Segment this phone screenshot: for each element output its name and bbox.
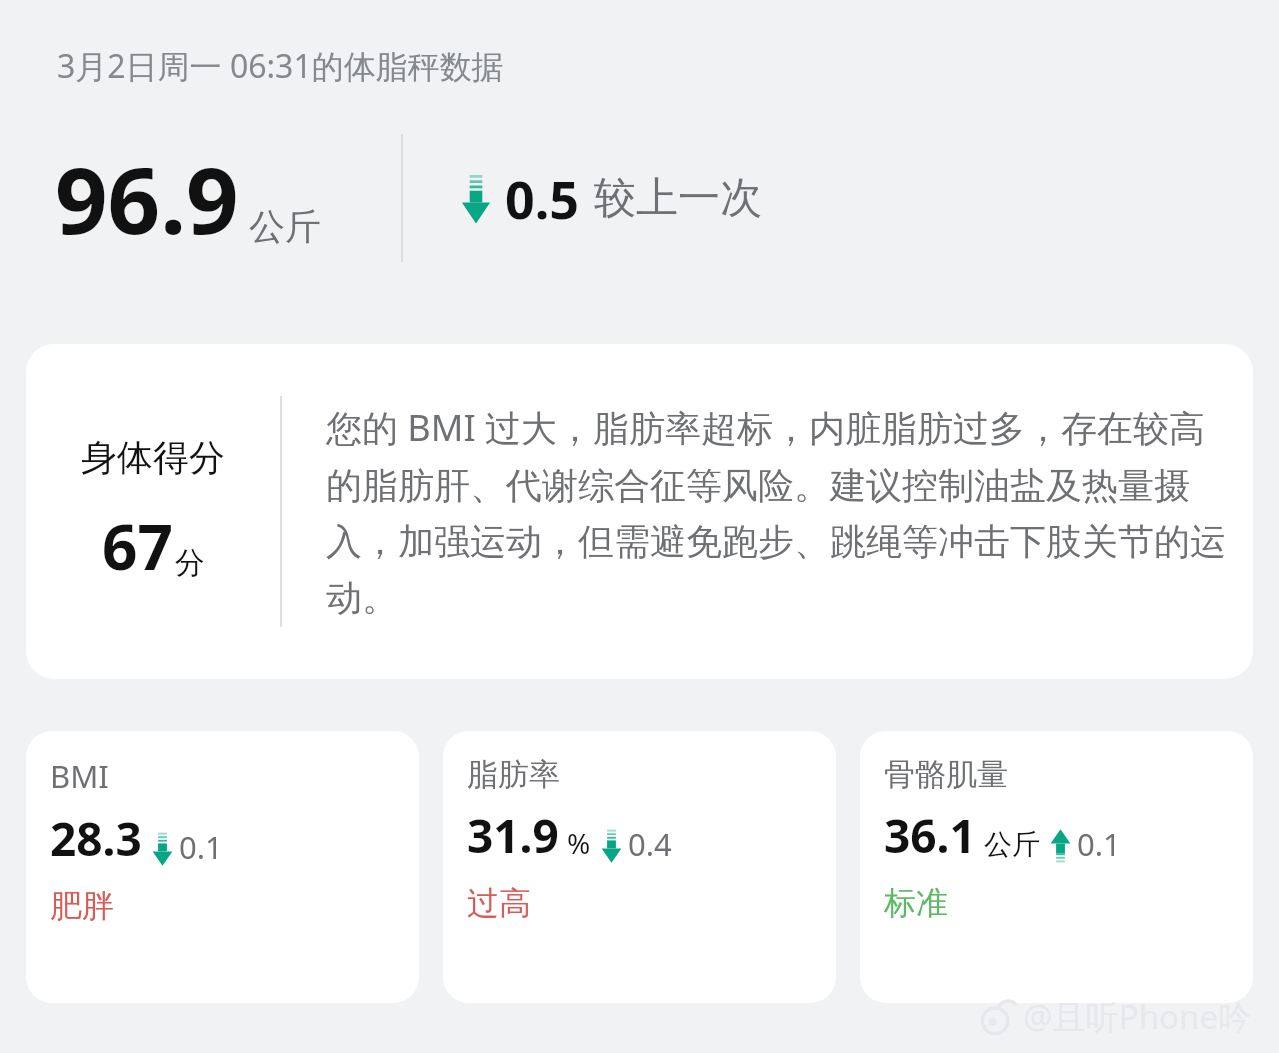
button[interactable]: 骨骼肌量	[860, 731, 1253, 1003]
staticText: 较上一次	[594, 172, 762, 225]
staticText: 36.1	[884, 804, 976, 867]
staticText: 28.3	[50, 807, 142, 870]
staticText: 公斤	[984, 827, 1040, 862]
staticText: 肥胖	[50, 886, 114, 926]
staticText: 31.9	[467, 804, 559, 867]
staticText: 您的 BMI 过大，脂肪率超标，内脏脂肪过多，存在较高的脂肪肝、代谢综合征等风险…	[326, 403, 1227, 621]
staticText: 96.9	[55, 136, 239, 261]
staticText: 0.1	[179, 826, 223, 868]
staticText: @且听Phone吟	[1023, 994, 1251, 1039]
staticText: 67	[102, 504, 173, 588]
button[interactable]: 身体得分	[26, 344, 1253, 679]
staticText: BMI	[50, 755, 109, 797]
staticText: 3月2日周一 06:31的体脂秤数据	[57, 44, 504, 88]
staticText: 0.5	[505, 163, 580, 234]
staticText: 过高	[467, 883, 531, 923]
staticText: 分	[175, 544, 205, 582]
staticText: 骨骼肌量	[884, 755, 1008, 794]
staticText: 脂肪率	[467, 755, 560, 794]
other: Increased	[1050, 829, 1071, 863]
staticText: 公斤	[249, 204, 321, 249]
other: Decreased	[461, 174, 491, 224]
other: Decreased	[152, 832, 173, 866]
staticText: %	[567, 824, 591, 862]
staticText: 0.4	[628, 823, 672, 865]
other: Decreased	[601, 829, 622, 863]
staticText: 0.1	[1077, 823, 1121, 865]
button[interactable]: 脂肪率	[443, 731, 836, 1003]
staticText: 标准	[884, 883, 948, 923]
button[interactable]: BMI	[26, 731, 419, 1003]
staticText: 身体得分	[81, 435, 225, 480]
